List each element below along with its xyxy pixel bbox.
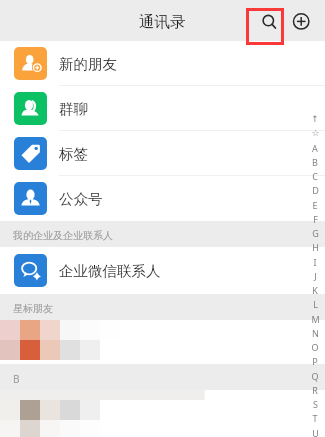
staticText: 标签 xyxy=(59,145,88,163)
staticText: 我的企业及企业联系人 xyxy=(13,229,113,242)
staticText: G xyxy=(312,227,319,239)
staticText: U xyxy=(312,427,319,437)
staticText: I xyxy=(313,256,317,268)
staticText: D xyxy=(312,184,319,196)
button[interactable]: 公众号 xyxy=(0,176,325,221)
button[interactable] xyxy=(0,320,325,364)
staticText: ↑ xyxy=(311,114,319,124)
staticText: N xyxy=(312,327,319,339)
button[interactable]: 新的朋友 xyxy=(0,41,325,86)
button[interactable] xyxy=(0,390,325,437)
staticText: B xyxy=(312,156,318,168)
staticText: A xyxy=(312,142,318,154)
staticText: 星标朋友 xyxy=(13,302,53,315)
staticText: E xyxy=(312,199,318,211)
staticText: Q xyxy=(311,370,319,382)
staticText: 企业微信联系人 xyxy=(59,262,161,280)
staticText: R xyxy=(312,384,318,396)
staticText: 公众号 xyxy=(59,190,103,208)
staticText: B xyxy=(13,372,20,386)
staticText: S xyxy=(313,398,318,410)
staticText: L xyxy=(313,298,318,310)
button[interactable]: 企业微信联系人 xyxy=(0,247,325,294)
staticText: C xyxy=(312,170,318,182)
button[interactable]: 群聊 xyxy=(0,86,325,131)
button[interactable]: Search xyxy=(249,4,283,38)
staticText: 群聊 xyxy=(59,100,88,118)
staticText: J xyxy=(314,270,317,282)
staticText: M xyxy=(311,313,320,325)
button[interactable]: 标签 xyxy=(0,131,325,176)
staticText: F xyxy=(313,213,318,225)
staticText: 新的朋友 xyxy=(59,55,117,73)
staticText: ☆ xyxy=(311,128,320,138)
staticText: K xyxy=(312,284,318,296)
staticText: T xyxy=(312,412,318,424)
staticText: 通讯录 xyxy=(139,12,186,32)
staticText: O xyxy=(311,341,319,353)
button[interactable]: Add xyxy=(287,4,317,34)
staticText: H xyxy=(312,241,319,253)
staticText: P xyxy=(312,355,318,367)
